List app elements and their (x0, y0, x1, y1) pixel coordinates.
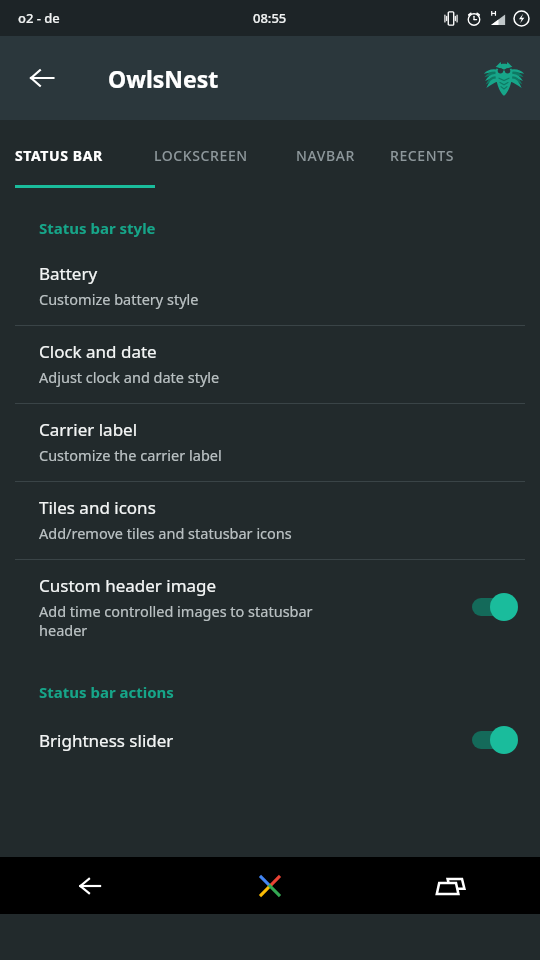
staticText: Add/remove tiles and statusbar icons (39, 523, 292, 543)
staticText: o2 - de (18, 9, 60, 27)
staticText: STATUS BAR (15, 146, 103, 165)
staticText: Customize battery style (39, 289, 199, 309)
staticText: Customize the carrier label (39, 445, 222, 465)
staticText: Carrier label (39, 418, 138, 441)
staticText: Status bar actions (39, 682, 174, 702)
staticText: 08:55 (253, 9, 287, 27)
staticText: OwlsNest (108, 63, 219, 94)
button[interactable]: Back (0, 857, 180, 914)
staticText: Brightness slider (39, 729, 174, 752)
staticText: RECENTS (390, 146, 454, 165)
staticText: Status bar style (39, 218, 156, 238)
button[interactable]: STATUS BAR (0, 120, 140, 190)
button[interactable]: LOCKSCREEN (140, 120, 281, 190)
button[interactable]: Battery (0, 248, 540, 325)
staticText: LOCKSCREEN (154, 146, 248, 165)
staticText: Custom header image (39, 574, 217, 597)
button[interactable]: Carrier label (0, 404, 540, 481)
staticText: Add time controlled images to statusbar … (39, 601, 313, 640)
other: Toggle (470, 593, 518, 621)
button[interactable]: Back (14, 50, 70, 106)
other: Toggle (470, 726, 518, 754)
staticText: Clock and date (39, 340, 157, 363)
button[interactable]: Tiles and icons (0, 482, 540, 559)
button[interactable]: Recent apps (360, 857, 540, 914)
button[interactable]: Brightness slider (0, 712, 540, 768)
staticText: Battery (39, 262, 98, 285)
staticText: NAVBAR (296, 146, 355, 165)
staticText: Adjust clock and date style (39, 367, 220, 387)
button[interactable]: Custom header image (0, 560, 540, 654)
button[interactable]: NAVBAR (281, 120, 375, 190)
button[interactable]: Home (180, 857, 360, 914)
button[interactable]: RECENTS (375, 120, 485, 190)
staticText: Tiles and icons (39, 496, 156, 519)
button[interactable]: Clock and date (0, 326, 540, 403)
button[interactable]: OwlsNest logo (476, 50, 532, 106)
